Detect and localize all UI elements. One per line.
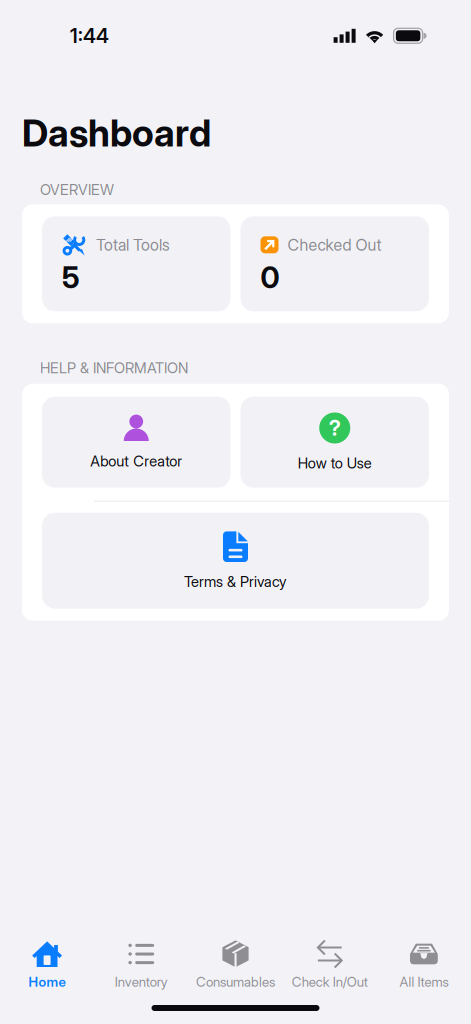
staticText: Home [29,974,66,990]
button[interactable]: Check In/Out [283,939,377,990]
button[interactable]: Total Tools [42,216,230,311]
staticText: Consumables [196,974,275,990]
button[interactable]: Home [0,939,94,990]
staticText: Dashboard [22,111,211,155]
button[interactable]: Inventory [94,939,188,990]
button[interactable]: ? [240,397,429,488]
staticText: HELP & INFORMATION [40,359,188,377]
button[interactable]: All Items [377,939,471,990]
button[interactable]: Terms & Privacy [42,513,429,609]
button[interactable]: Checked Out [240,216,429,311]
staticText: How to Use [298,454,372,472]
staticText: About Creator [90,452,182,470]
button[interactable]: Consumables [188,939,283,990]
staticText: 5 [62,260,80,295]
staticText: 1:44 [70,24,109,48]
staticText: Terms & Privacy [184,573,287,590]
staticText: ? [329,415,341,441]
staticText: Inventory [115,974,168,990]
staticText: All Items [399,974,448,990]
button[interactable]: About Creator [42,397,230,488]
staticText: 0 [260,260,279,295]
staticText: Checked Out [287,235,381,254]
staticText: OVERVIEW [40,181,114,198]
staticText: Check In/Out [292,974,368,990]
staticText: Total Tools [96,235,170,254]
